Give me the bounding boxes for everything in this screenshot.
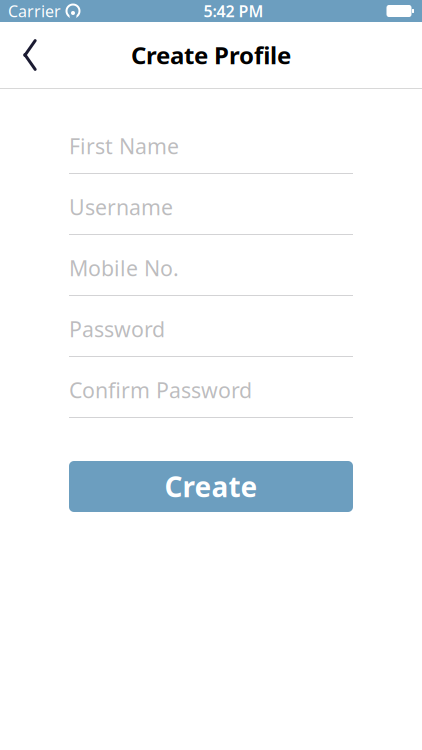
staticText: Create Profile <box>131 39 291 71</box>
button[interactable]: Back <box>8 33 52 77</box>
staticText: Username <box>69 193 173 221</box>
staticText: Confirm Password <box>69 376 252 404</box>
staticText: First Name <box>69 132 179 160</box>
button[interactable]: Create <box>69 461 353 512</box>
staticText: Mobile No. <box>69 254 179 282</box>
staticText: Password <box>69 315 165 343</box>
staticText: 5:42 PM <box>203 0 263 22</box>
staticText: Carrier <box>8 0 61 22</box>
staticText: Create <box>164 468 257 505</box>
